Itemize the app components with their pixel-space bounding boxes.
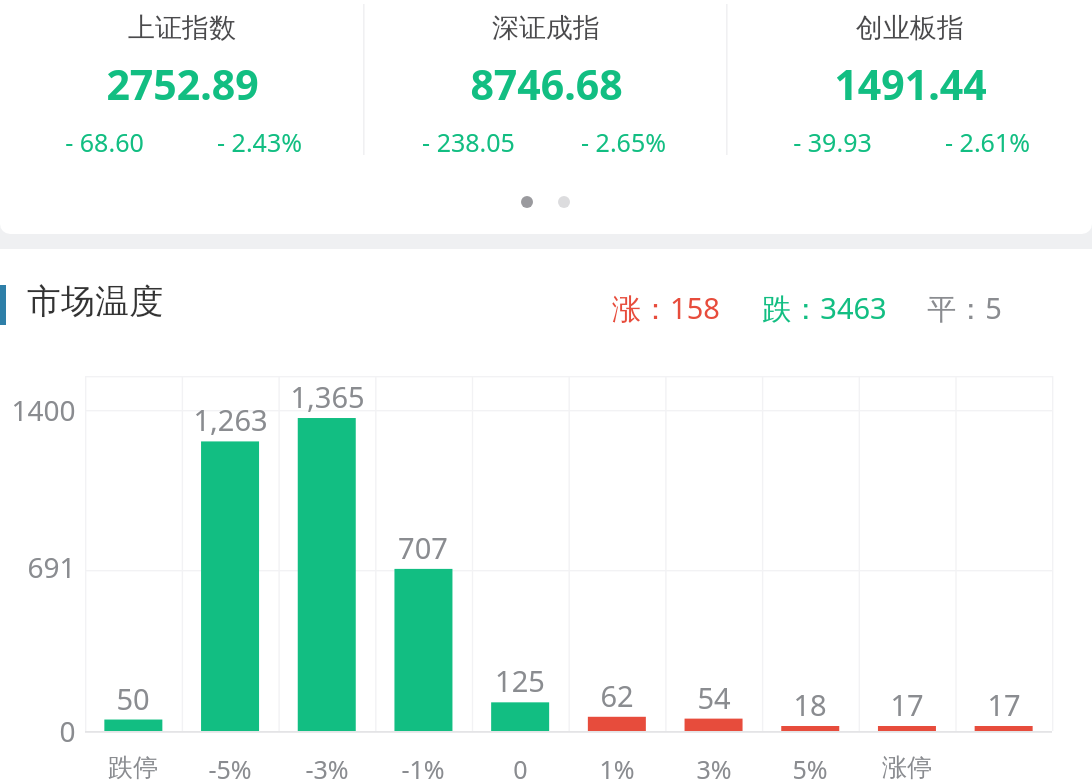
staticText: 深证成指: [492, 11, 600, 45]
staticText: 54: [697, 678, 731, 717]
staticText: -5%: [208, 752, 252, 783]
staticText: 1400: [11, 391, 76, 429]
staticText: 平：5: [927, 288, 1002, 328]
staticText: 50: [116, 679, 150, 718]
staticText: 17: [890, 685, 924, 724]
staticText: 17: [987, 685, 1021, 724]
staticText: 691: [27, 548, 76, 586]
button[interactable]: 市场温度: [27, 280, 163, 323]
staticText: -1%: [401, 752, 445, 783]
button[interactable]: Market temperature distribution chart: [0, 345, 1092, 783]
staticText: - 2.65%: [581, 125, 666, 159]
staticText: - 2.61%: [945, 125, 1030, 159]
staticText: -3%: [305, 752, 349, 783]
staticText: 707: [398, 528, 448, 567]
staticText: 涨停: [882, 752, 932, 783]
staticText: 8746.68: [470, 56, 623, 112]
staticText: 1,365: [290, 377, 365, 416]
staticText: - 68.60: [65, 125, 144, 159]
staticText: 0: [59, 712, 76, 750]
staticText: 18: [793, 685, 827, 724]
staticText: 涨：158: [612, 288, 720, 328]
staticText: 创业板指: [856, 11, 964, 45]
staticText: 跌：3463: [762, 288, 887, 328]
staticText: 1%: [599, 752, 635, 783]
staticText: 跌停: [108, 752, 158, 783]
staticText: 市场温度: [27, 280, 163, 323]
staticText: 1491.44: [834, 56, 987, 112]
staticText: 5%: [792, 752, 828, 783]
staticText: 3%: [696, 752, 732, 783]
staticText: 上证指数: [128, 11, 236, 45]
staticText: - 2.43%: [217, 125, 302, 159]
button[interactable]: Page 1: [521, 196, 533, 208]
staticText: 0: [513, 752, 528, 783]
staticText: 2752.89: [106, 56, 259, 112]
button[interactable]: 上证指数: [0, 0, 364, 165]
button[interactable]: Page 2: [558, 196, 570, 208]
button[interactable]: 创业板指: [728, 0, 1092, 165]
staticText: - 39.93: [793, 125, 872, 159]
staticText: 1,263: [193, 400, 268, 439]
staticText: - 238.05: [422, 125, 515, 159]
staticText: 62: [600, 676, 634, 715]
staticText: 125: [495, 661, 545, 700]
button[interactable]: 深证成指: [364, 0, 728, 165]
